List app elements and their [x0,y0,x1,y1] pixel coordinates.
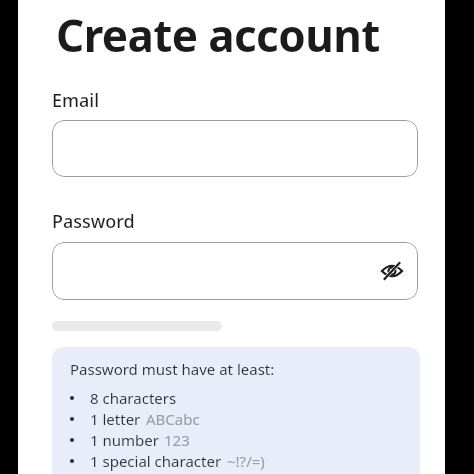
staticText: 1 special character [90,451,222,471]
staticText: ABCabc [146,409,200,429]
staticText: Create account [56,5,380,63]
button[interactable]: Email input [52,120,418,177]
staticText: 1 number [90,430,159,450]
staticText: Password [52,209,135,233]
staticText: Email [52,88,100,112]
button[interactable]: Show password [52,242,418,300]
staticText: Password must have at least: [70,359,275,379]
staticText: 1 letter [90,409,141,429]
staticText: 8 characters [90,388,177,408]
button[interactable]: Show password [375,254,409,288]
staticText: 123 [164,430,190,450]
staticText: ~!?/=) [227,451,265,471]
